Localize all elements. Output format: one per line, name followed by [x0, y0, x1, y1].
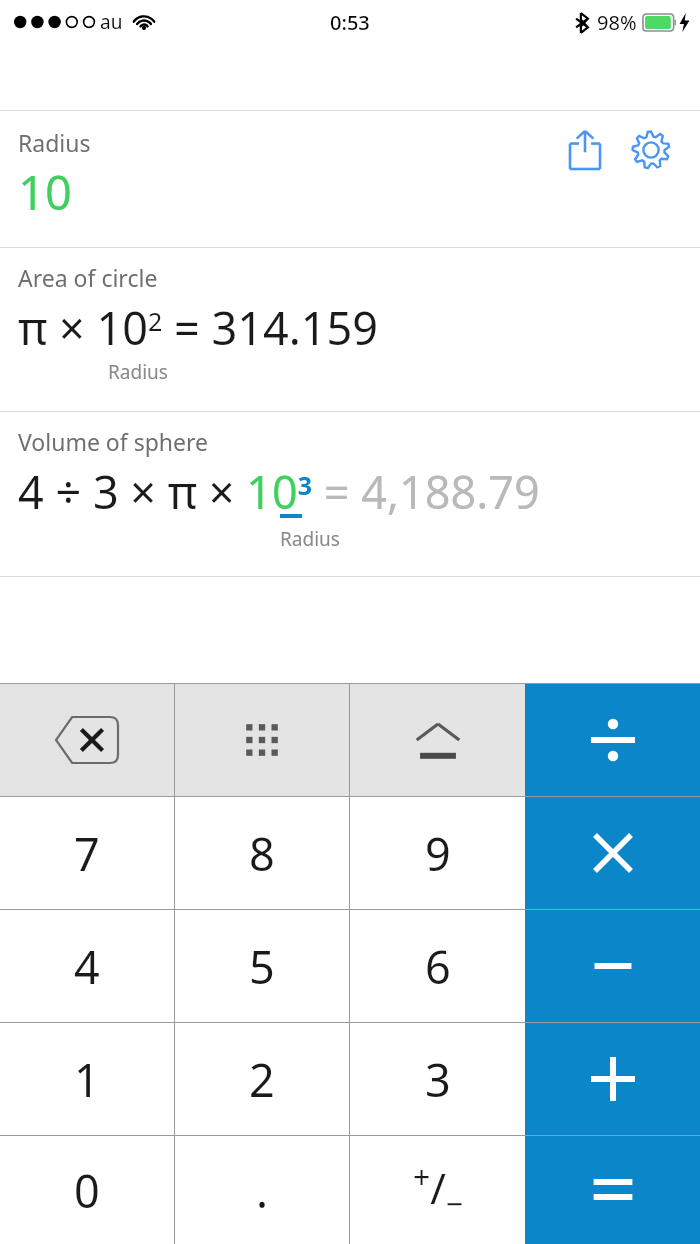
button[interactable]: 0: [0, 1136, 174, 1244]
button[interactable]: 1: [0, 1023, 174, 1135]
staticText: π × 102 = 314.159: [18, 297, 378, 358]
staticText: 8: [249, 823, 275, 884]
staticText: Area of circle: [18, 262, 158, 293]
staticText: 9: [425, 823, 451, 884]
staticText: Volume of sphere: [18, 426, 209, 457]
button[interactable]: 9: [350, 797, 525, 909]
button[interactable]: Keypad: [175, 684, 349, 796]
staticText: 5: [249, 936, 275, 997]
button[interactable]: 6: [350, 910, 525, 1022]
button[interactable]: .: [175, 1136, 349, 1244]
button[interactable]: Divide: [525, 684, 700, 796]
staticText: 7: [74, 823, 100, 884]
button[interactable]: 4: [0, 910, 174, 1022]
staticText: .: [256, 1160, 269, 1221]
staticText: 0:53: [330, 9, 370, 36]
button[interactable]: 3: [350, 1023, 525, 1135]
button[interactable]: Area of circle: [0, 248, 700, 411]
button[interactable]: Minus: [525, 910, 700, 1022]
staticText: 98%: [597, 9, 637, 36]
button[interactable]: Volume of sphere: [0, 412, 700, 576]
staticText: 10: [18, 160, 72, 224]
staticText: 1: [74, 1049, 100, 1110]
staticText: +/−: [413, 1156, 463, 1224]
button[interactable]: Power: [350, 684, 525, 796]
button[interactable]: Plus: [525, 1023, 700, 1135]
staticText: Radius: [280, 526, 340, 552]
staticText: 6: [425, 936, 451, 997]
button[interactable]: 8: [175, 797, 349, 909]
staticText: 2: [249, 1049, 275, 1110]
button[interactable]: 5: [175, 910, 349, 1022]
staticText: 0: [74, 1160, 100, 1221]
button[interactable]: Backspace: [0, 684, 174, 796]
staticText: Radius: [108, 359, 168, 385]
staticText: 3: [425, 1049, 451, 1110]
button[interactable]: Share: [558, 123, 612, 177]
button[interactable]: 2: [175, 1023, 349, 1135]
button[interactable]: +/−: [350, 1136, 525, 1244]
button[interactable]: Equals: [525, 1136, 700, 1244]
staticText: 4: [74, 936, 100, 997]
staticText: 4 ÷ 3 × π × 103 = 4,188.79: [18, 461, 540, 522]
button[interactable]: Settings: [624, 123, 678, 177]
staticText: au: [100, 9, 123, 35]
button[interactable]: Multiply: [525, 797, 700, 909]
button[interactable]: 7: [0, 797, 174, 909]
staticText: Radius: [18, 127, 91, 158]
